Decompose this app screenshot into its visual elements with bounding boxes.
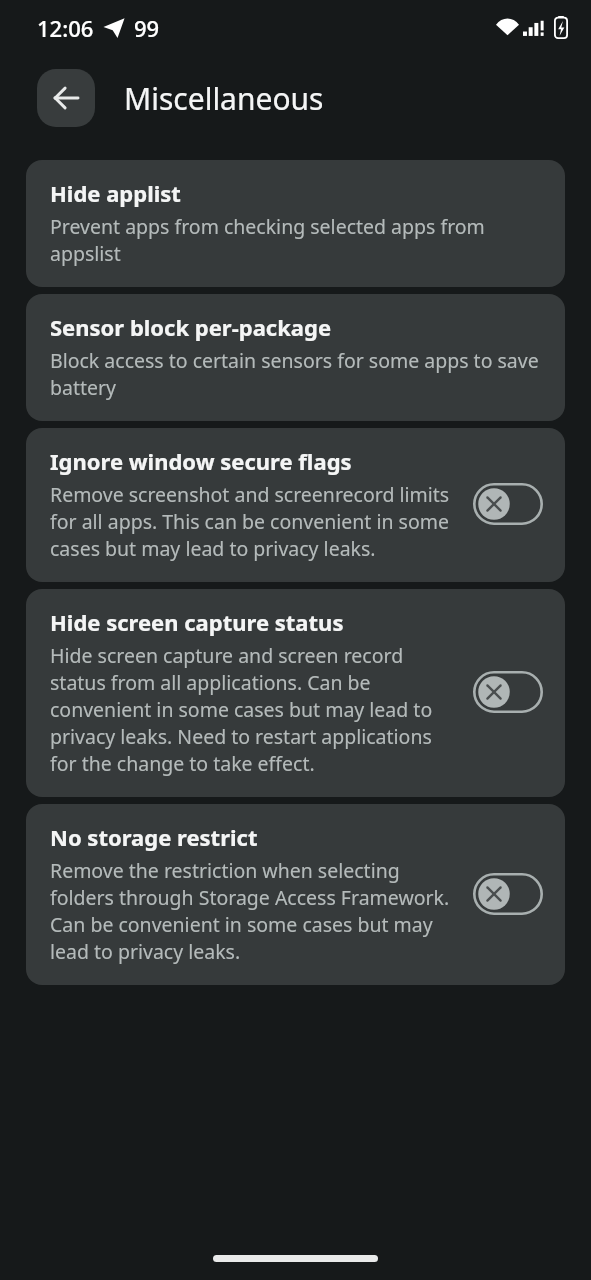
staticText: Hide screen capture and screen record st…	[50, 642, 455, 777]
button[interactable]: Ignore window secure flags	[26, 428, 565, 582]
button[interactable]: Toggle, off	[473, 873, 543, 915]
staticText: Hide applist	[50, 178, 181, 208]
staticText: Remove the restriction when selecting fo…	[50, 857, 455, 965]
staticText: Sensor block per-package	[50, 312, 332, 342]
staticText: Block access to certain sensors for some…	[50, 347, 543, 401]
button[interactable]: Back	[37, 69, 95, 127]
staticText: No storage restrict	[50, 822, 258, 852]
button[interactable]: Hide applist	[26, 160, 565, 287]
staticText: 99	[134, 13, 160, 43]
staticText: Miscellaneous	[124, 78, 324, 119]
staticText: Remove screenshot and screenrecord limit…	[50, 481, 455, 562]
button[interactable]: Sensor block per-package	[26, 294, 565, 421]
button[interactable]: Hide screen capture status	[26, 589, 565, 797]
staticText: 12:06	[37, 13, 94, 43]
button[interactable]: Toggle, off	[473, 483, 543, 525]
staticText: Ignore window secure flags	[50, 446, 352, 476]
button[interactable]: Toggle, off	[473, 671, 543, 713]
button[interactable]: No storage restrict	[26, 804, 565, 985]
staticText: Hide screen capture status	[50, 607, 344, 637]
staticText: Prevent apps from checking selected apps…	[50, 213, 543, 267]
